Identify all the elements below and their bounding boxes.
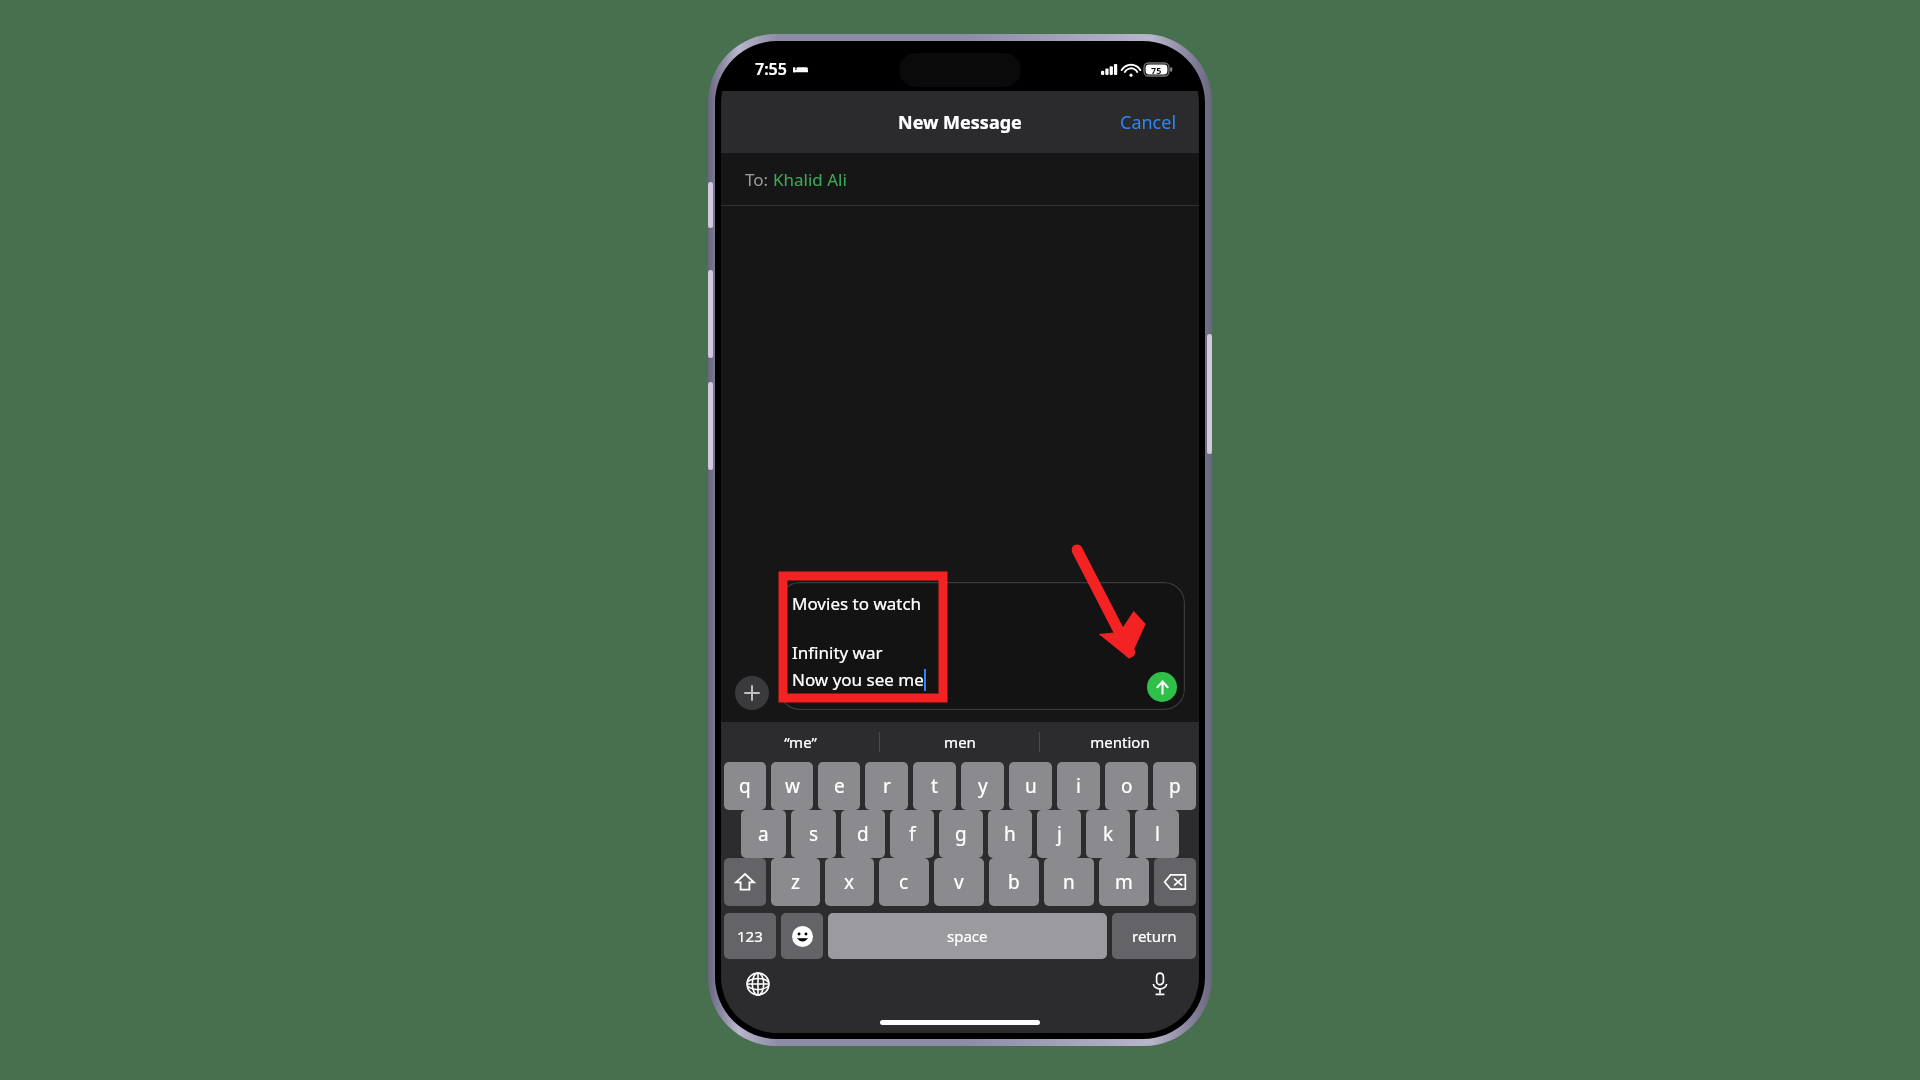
staticText: 75 <box>1151 64 1162 76</box>
button[interactable]: i <box>1057 762 1100 810</box>
button[interactable]: u <box>1009 762 1052 810</box>
button[interactable]: b <box>989 858 1039 906</box>
button[interactable]: Movies to watch <box>779 582 1185 710</box>
button[interactable]: Shift <box>724 858 766 906</box>
button[interactable]: return <box>1112 913 1196 959</box>
staticText: i <box>1076 773 1081 799</box>
button[interactable]: l <box>1135 810 1179 858</box>
button[interactable]: To: <box>721 153 1199 205</box>
staticText: Movies to watch <box>792 592 922 615</box>
button[interactable]: y <box>961 762 1004 810</box>
button[interactable]: q <box>724 762 766 810</box>
staticText: f <box>909 821 916 847</box>
button[interactable]: c <box>879 858 929 906</box>
button[interactable]: e <box>818 762 860 810</box>
staticText: Now you see me <box>792 668 924 691</box>
staticText: “me” <box>784 732 817 752</box>
staticText: To: <box>745 168 773 191</box>
button[interactable]: s <box>791 810 836 858</box>
button[interactable]: Change keyboard <box>741 967 775 1001</box>
staticText: r <box>883 773 891 799</box>
staticText: t <box>931 773 938 799</box>
button[interactable]: z <box>771 858 820 906</box>
button[interactable]: Dictation <box>1143 967 1177 1001</box>
staticText: b <box>1008 869 1020 895</box>
staticText: Khalid Ali <box>773 168 847 191</box>
button[interactable]: “me” <box>721 722 879 762</box>
staticText: w <box>785 773 800 799</box>
staticText: 7:55 <box>755 58 787 80</box>
button[interactable]: f <box>890 810 934 858</box>
staticText: space <box>947 926 988 946</box>
staticText: q <box>739 773 751 799</box>
button[interactable]: mention <box>1040 722 1199 762</box>
button[interactable]: x <box>825 858 874 906</box>
button[interactable]: v <box>934 858 984 906</box>
button[interactable]: 123 <box>724 913 776 959</box>
staticText: 123 <box>737 926 763 946</box>
staticText: mention <box>1090 732 1150 752</box>
button[interactable]: Send <box>1147 672 1177 702</box>
button[interactable]: a <box>741 810 786 858</box>
staticText: s <box>809 821 819 847</box>
staticText: y <box>978 773 988 799</box>
staticText: Cancel <box>1120 110 1177 135</box>
staticText: z <box>791 869 800 895</box>
button[interactable]: p <box>1153 762 1196 810</box>
button[interactable]: d <box>841 810 885 858</box>
button[interactable]: o <box>1105 762 1148 810</box>
button[interactable]: n <box>1044 858 1094 906</box>
staticText: o <box>1121 773 1133 799</box>
button[interactable]: k <box>1086 810 1130 858</box>
staticText: h <box>1004 821 1016 847</box>
button[interactable]: men <box>880 722 1039 762</box>
staticText: m <box>1115 869 1133 895</box>
staticText: c <box>899 869 909 895</box>
staticText: New Message <box>898 110 1022 135</box>
button[interactable]: w <box>771 762 813 810</box>
button[interactable]: Backspace <box>1154 858 1196 906</box>
staticText: x <box>844 869 855 895</box>
staticText: l <box>1155 821 1160 847</box>
button[interactable]: r <box>865 762 908 810</box>
button[interactable]: Emoji <box>781 913 823 959</box>
button[interactable]: h <box>988 810 1032 858</box>
staticText: v <box>954 869 964 895</box>
staticText: k <box>1103 821 1114 847</box>
staticText: return <box>1132 926 1177 946</box>
button[interactable]: space <box>828 913 1107 959</box>
staticText: g <box>955 821 967 847</box>
button[interactable]: Cancel <box>1098 96 1199 149</box>
button[interactable]: Add attachment <box>735 676 769 710</box>
staticText: d <box>857 821 869 847</box>
staticText: men <box>944 732 976 752</box>
button[interactable]: g <box>939 810 983 858</box>
staticText: n <box>1063 869 1075 895</box>
staticText: a <box>758 821 769 847</box>
button[interactable]: t <box>913 762 956 810</box>
staticText: Infinity war <box>792 641 883 664</box>
staticText: e <box>834 773 845 799</box>
staticText: p <box>1169 773 1181 799</box>
staticText: u <box>1025 773 1037 799</box>
button[interactable]: j <box>1037 810 1081 858</box>
button[interactable]: m <box>1099 858 1149 906</box>
staticText: j <box>1057 821 1062 847</box>
